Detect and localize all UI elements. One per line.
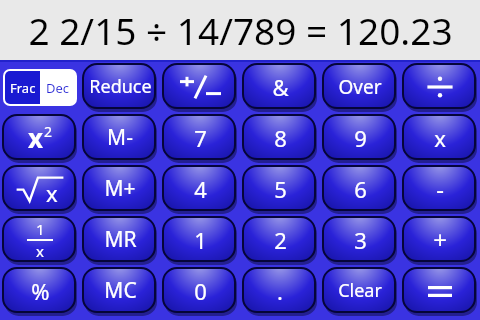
button[interactable]: 8	[243, 115, 317, 162]
button[interactable]: Clear	[323, 268, 397, 315]
staticText: x	[46, 178, 58, 204]
button[interactable]: 7	[163, 115, 237, 162]
button[interactable]: 0	[163, 268, 237, 315]
button[interactable]: Frac	[5, 71, 40, 104]
staticText: +	[433, 223, 447, 256]
button[interactable]: 9	[323, 115, 397, 162]
button[interactable]: x squared	[3, 115, 77, 162]
staticText: 0	[194, 276, 207, 306]
button[interactable]: 2	[243, 217, 317, 264]
button[interactable]: Reduce	[83, 64, 157, 111]
staticText: 8	[274, 123, 287, 153]
staticText: 2 2/15 ÷ 14/789 = 120.23	[28, 5, 453, 55]
staticText: 4	[194, 174, 207, 204]
staticText: MR	[104, 225, 137, 254]
staticText: Reduce	[89, 74, 152, 99]
button[interactable]: 1	[163, 217, 237, 264]
button[interactable]: 5	[243, 166, 317, 213]
staticText: 9	[354, 123, 367, 153]
staticText: &	[272, 72, 289, 102]
staticText: 7	[194, 123, 207, 153]
staticText: x	[28, 120, 44, 155]
staticText: Clear	[338, 278, 382, 303]
button[interactable]: %	[3, 268, 77, 315]
staticText: MC	[104, 276, 137, 305]
staticText: Frac	[10, 79, 36, 97]
staticText: 3	[354, 225, 367, 255]
button[interactable]: Plus minus sign change	[163, 64, 237, 111]
staticText: Over	[338, 74, 382, 100]
staticText: 2	[274, 225, 287, 255]
button[interactable]: 3	[323, 217, 397, 264]
staticText: .	[277, 276, 283, 306]
staticText: 1	[194, 225, 207, 255]
button[interactable]: M-	[83, 115, 157, 162]
button[interactable]: MC	[83, 268, 157, 315]
staticText: x	[36, 241, 44, 261]
button[interactable]: Divide	[403, 64, 477, 111]
button[interactable]: MR	[83, 217, 157, 264]
staticText: M-	[107, 123, 133, 152]
staticText: 2	[44, 122, 53, 141]
button[interactable]: Square root	[3, 166, 77, 213]
staticText: 5	[274, 174, 287, 204]
button[interactable]: One over x reciprocal	[3, 217, 77, 264]
button[interactable]: 4	[163, 166, 237, 213]
button[interactable]: Over	[323, 64, 397, 111]
button[interactable]: .	[243, 268, 317, 315]
staticText: x	[434, 123, 446, 153]
button[interactable]: Dec	[40, 71, 75, 104]
button[interactable]: Equals	[403, 268, 477, 315]
staticText: Dec	[46, 79, 70, 97]
staticText: -	[436, 172, 444, 205]
button[interactable]: M+	[83, 166, 157, 213]
button[interactable]: -	[403, 166, 477, 213]
button[interactable]: 6	[323, 166, 397, 213]
staticText: %	[31, 276, 50, 306]
button[interactable]: x	[403, 115, 477, 162]
button[interactable]: +	[403, 217, 477, 264]
staticText: 6	[354, 174, 367, 204]
button[interactable]: &	[243, 64, 317, 111]
staticText: M+	[104, 174, 136, 203]
staticText: 1	[36, 219, 45, 239]
